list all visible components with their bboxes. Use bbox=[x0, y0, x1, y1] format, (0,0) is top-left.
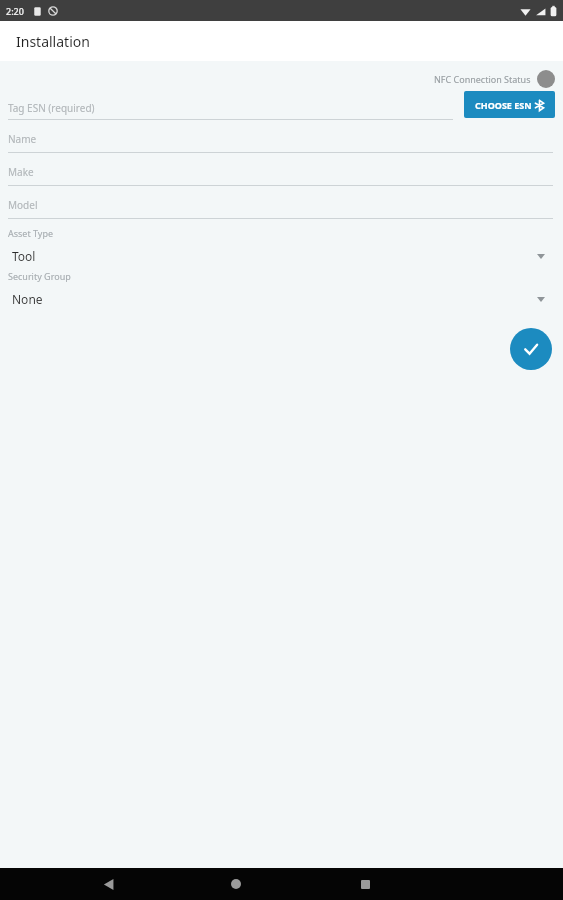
button[interactable]: CHOOSE ESN bbox=[464, 91, 555, 118]
staticText: None bbox=[12, 291, 43, 307]
button[interactable]: Security Group bbox=[0, 270, 563, 307]
staticText: Model bbox=[8, 198, 38, 212]
button[interactable]: Name bbox=[8, 120, 553, 153]
button[interactable]: Make bbox=[8, 153, 553, 186]
staticText: Asset Type bbox=[8, 227, 54, 239]
button[interactable]: Back bbox=[88, 868, 128, 900]
staticText: Security Group bbox=[8, 270, 71, 282]
staticText: Make bbox=[8, 165, 34, 179]
other: NFC Connection Status indicator bbox=[537, 70, 555, 88]
button[interactable]: Model bbox=[8, 186, 553, 219]
staticText: Name bbox=[8, 132, 37, 146]
staticText: 2:20 bbox=[6, 5, 24, 17]
staticText: Installation bbox=[16, 32, 90, 51]
staticText: Tool bbox=[12, 248, 36, 264]
button[interactable]: Home bbox=[216, 868, 256, 900]
button[interactable]: Confirm bbox=[510, 328, 552, 370]
button[interactable]: Asset Type bbox=[0, 227, 563, 264]
staticText: CHOOSE ESN bbox=[475, 99, 532, 111]
button[interactable]: Recent apps bbox=[345, 868, 385, 900]
staticText: Tag ESN (required) bbox=[8, 101, 95, 115]
staticText: NFC Connection Status bbox=[434, 73, 531, 85]
